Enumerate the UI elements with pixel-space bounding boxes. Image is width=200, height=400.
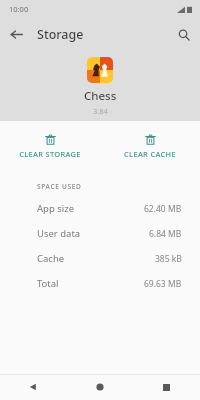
button[interactable]: Total <box>0 271 200 296</box>
button[interactable]: User data <box>0 221 200 246</box>
staticText: 3.84 <box>93 106 108 116</box>
staticText: Total <box>37 277 59 290</box>
staticText: 69.63 MB <box>144 278 182 290</box>
button[interactable]: Cache <box>0 246 200 271</box>
button[interactable]: CLEAR CACHE <box>100 121 200 171</box>
staticText: Chess <box>84 88 117 104</box>
button[interactable]: Search <box>167 18 200 51</box>
button[interactable]: Back <box>0 18 33 51</box>
staticText: Storage <box>37 26 84 43</box>
staticText: CLEAR CACHE <box>124 149 176 159</box>
button[interactable]: Back <box>0 374 66 400</box>
staticText: 6.84 MB <box>149 228 182 240</box>
staticText: App size <box>37 202 75 215</box>
staticText: SPACE USED <box>37 182 82 191</box>
button[interactable]: App size <box>0 196 200 221</box>
button[interactable]: CLEAR STORAGE <box>0 121 100 171</box>
staticText: User data <box>37 227 81 240</box>
staticText: CLEAR STORAGE <box>19 149 81 159</box>
staticText: 10:00 <box>9 4 29 14</box>
staticText: 385 kB <box>155 253 182 265</box>
button[interactable]: Home <box>66 374 133 400</box>
staticText: Cache <box>37 252 65 265</box>
button[interactable]: Recent apps <box>133 374 200 400</box>
staticText: 62.40 MB <box>144 203 182 215</box>
